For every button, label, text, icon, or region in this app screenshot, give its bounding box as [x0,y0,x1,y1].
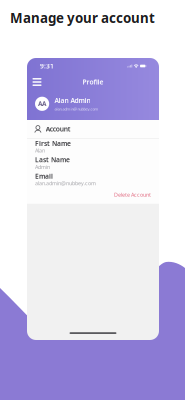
staticText: Profile [82,78,103,86]
staticText: Last Name [35,155,70,164]
staticText: Alan Admin [54,96,90,105]
staticText: Email [35,172,53,181]
staticText: Admin [35,163,50,170]
button[interactable]: Delete Account [114,191,151,198]
staticText: alan.admin@nubbey.com [54,106,98,112]
staticText: Account [46,125,71,133]
staticText: AA [38,99,46,108]
staticText: 9:31 [40,62,54,70]
staticText: Manage your account [10,9,155,27]
staticText: Alan [35,147,45,154]
staticText: Delete Account [114,191,151,198]
staticText: alan.admin@nubbey.com [35,180,96,187]
staticText: First Name [35,139,71,148]
button[interactable]: Menu [29,74,45,90]
